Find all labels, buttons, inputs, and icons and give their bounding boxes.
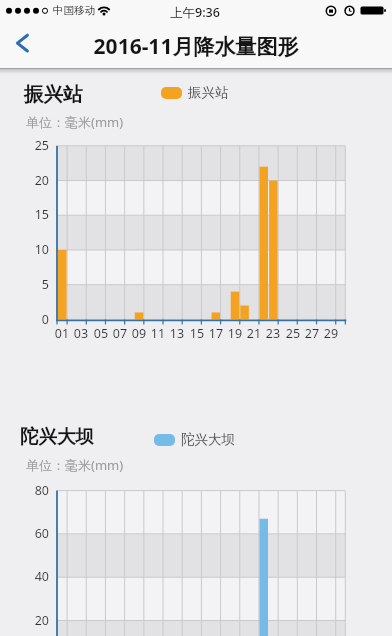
staticText: 陀兴大坝: [20, 425, 94, 448]
staticText: 29: [319, 325, 343, 342]
button[interactable]: 振兴站: [161, 84, 229, 101]
staticText: 振兴站: [24, 82, 83, 107]
staticText: 09: [127, 325, 151, 342]
staticText: 中国移动: [53, 4, 95, 17]
staticText: 振兴站: [188, 84, 229, 101]
staticText: 21: [242, 325, 266, 342]
staticText: 上午9:36: [163, 4, 227, 21]
staticText: 25: [281, 325, 305, 342]
staticText: 40: [9, 568, 49, 585]
staticText: 80: [9, 482, 49, 499]
staticText: 03: [69, 325, 93, 342]
staticText: 陀兴大坝: [181, 431, 235, 448]
staticText: 23: [261, 325, 285, 342]
staticText: 0: [9, 311, 49, 328]
staticText: 07: [108, 325, 132, 342]
staticText: 17: [204, 325, 228, 342]
staticText: 20: [9, 612, 49, 629]
staticText: 2016-11月降水量图形: [0, 32, 392, 61]
staticText: 01: [50, 325, 74, 342]
staticText: 05: [89, 325, 113, 342]
staticText: 单位：毫米(mm): [26, 456, 124, 474]
staticText: 13: [165, 325, 189, 342]
staticText: 20: [9, 172, 49, 189]
staticText: 27: [300, 325, 324, 342]
staticText: 10: [9, 241, 49, 258]
staticText: 60: [9, 525, 49, 542]
staticText: 11: [146, 325, 170, 342]
button[interactable]: 陀兴大坝: [154, 431, 235, 448]
button[interactable]: [6, 26, 40, 62]
staticText: 19: [223, 325, 247, 342]
staticText: 15: [9, 206, 49, 223]
staticText: 5: [9, 276, 49, 293]
staticText: 单位：毫米(mm): [26, 113, 124, 131]
staticText: 25: [9, 137, 49, 154]
staticText: 15: [185, 325, 209, 342]
